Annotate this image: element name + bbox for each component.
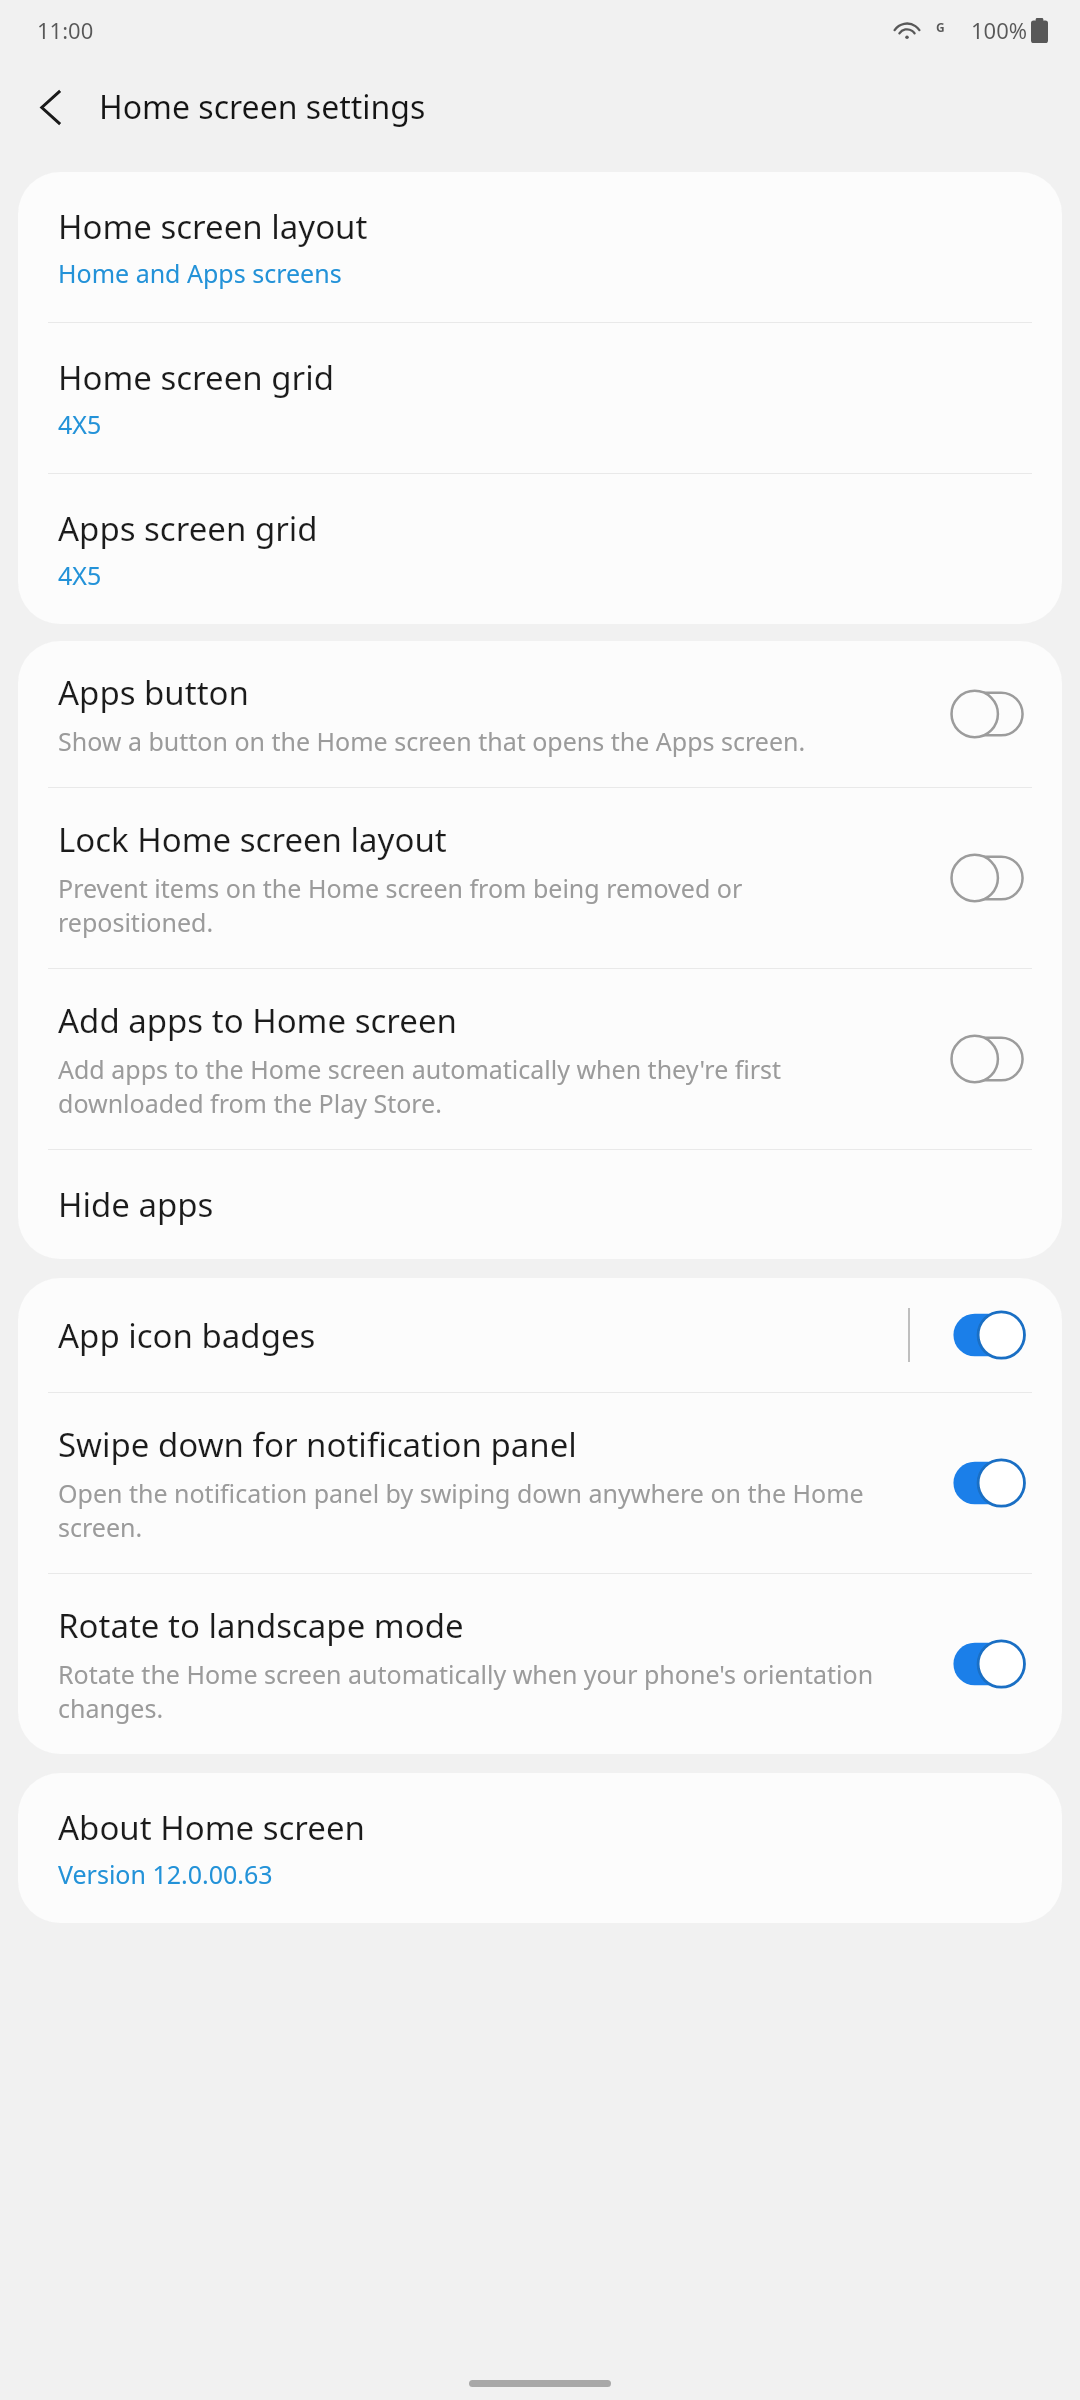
staticText: 4X5 — [58, 558, 102, 592]
button[interactable]: Swipe down for notification panel — [18, 1393, 1062, 1573]
button[interactable]: Lock Home screen layout — [18, 788, 1062, 968]
staticText: App icon badges — [58, 1313, 316, 1358]
staticText: G — [936, 19, 945, 35]
staticText: Add apps to the Home screen automaticall… — [58, 1052, 782, 1120]
staticText: About Home screen — [58, 1805, 365, 1850]
button[interactable]: Add apps to Home screen — [18, 969, 1062, 1149]
button[interactable]: App icon badges — [18, 1278, 1062, 1392]
button[interactable]: Apps screen grid — [18, 474, 1062, 624]
staticText: Apps button — [58, 670, 249, 715]
other: Battery 100 percent — [1031, 18, 1048, 43]
staticText: Rotate the Home screen automatically whe… — [58, 1657, 874, 1725]
staticText: 100% — [971, 15, 1028, 45]
staticText: Swipe down for notification panel — [58, 1422, 577, 1467]
button[interactable]: Hide apps — [18, 1150, 1062, 1259]
button[interactable]: Home screen grid — [18, 323, 1062, 473]
staticText: Apps screen grid — [58, 506, 318, 551]
button[interactable]: Switch off — [940, 1031, 1036, 1087]
button[interactable]: Back — [20, 76, 82, 138]
button[interactable]: Apps button — [18, 641, 1062, 787]
staticText: Lock Home screen layout — [58, 817, 447, 862]
staticText: Rotate to landscape mode — [58, 1603, 464, 1648]
staticText: Add apps to Home screen — [58, 998, 457, 1043]
staticText: Home screen grid — [58, 355, 335, 400]
staticText: 11:00 — [37, 15, 94, 45]
staticText: Home and Apps screens — [58, 256, 342, 290]
button[interactable]: Home screen layout — [18, 172, 1062, 322]
staticText: 4X5 — [58, 407, 102, 441]
button[interactable]: Switch on — [940, 1455, 1036, 1511]
button[interactable]: Rotate to landscape mode — [18, 1574, 1062, 1754]
staticText: Version 12.0.00.63 — [58, 1857, 273, 1891]
staticText: Open the notification panel by swiping d… — [58, 1476, 864, 1544]
button[interactable]: Switch on — [940, 1636, 1036, 1692]
button[interactable]: Switch off — [940, 850, 1036, 906]
staticText: Prevent items on the Home screen from be… — [58, 871, 743, 939]
staticText: Home screen layout — [58, 204, 368, 249]
other: Wi-Fi — [896, 22, 918, 39]
button[interactable]: About Home screen — [18, 1773, 1062, 1923]
button[interactable]: Switch off — [940, 686, 1036, 742]
staticText: Show a button on the Home screen that op… — [58, 724, 806, 758]
staticText: Home screen settings — [99, 85, 426, 129]
staticText: Hide apps — [58, 1182, 214, 1227]
button[interactable]: Switch on — [940, 1307, 1036, 1363]
